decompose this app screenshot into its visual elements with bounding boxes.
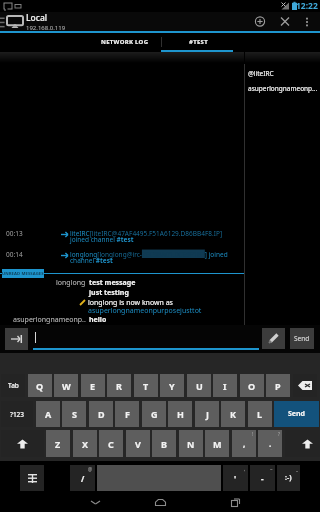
staticText: T [143,380,149,392]
button[interactable]: D [89,401,113,427]
staticText: Y [169,380,175,392]
staticText: test message [89,278,136,288]
staticText: longlong is now known as asuperlongnameo… [88,298,202,315]
staticText: asuperlongnameonp... [248,84,318,93]
button[interactable] [1,430,44,457]
button[interactable]: Message input [33,327,259,350]
staticText: @ [88,466,93,472]
button[interactable]: NETWORK LOG [89,33,161,50]
button[interactable]: Recents [225,493,245,512]
staticText: _ [296,466,298,472]
staticText: ?123 [10,410,25,419]
staticText: N [187,438,195,450]
button[interactable] [293,374,317,397]
staticText: A [45,408,52,420]
staticText: #TEST [189,38,208,46]
staticText: liteIRC[liteIRC@47AF4495.F51A6129.D86BB4… [70,229,237,244]
staticText: M [213,438,222,450]
staticText: B [161,438,167,450]
button[interactable]: B [152,430,176,457]
staticText: hello [89,315,107,325]
button[interactable]: Switch keyboard [20,465,44,491]
button[interactable]: #TEST [162,33,234,50]
button[interactable]: - [250,465,275,491]
staticText: Z [55,438,61,450]
button[interactable]: I [213,374,237,397]
staticText: longlong [56,278,86,288]
staticText: asuperlongnameonp.. [13,315,86,325]
button[interactable]: O [240,374,264,397]
button[interactable]: M [205,430,229,457]
staticText: Local [26,12,48,24]
staticText: O [248,380,256,392]
staticText: ~ [270,466,273,472]
button[interactable]: H [168,401,192,427]
button[interactable]: Send [290,328,314,349]
button[interactable]: ' [223,465,248,491]
button[interactable]: Q [28,374,52,397]
staticText: J [206,408,209,420]
button[interactable]: Back [85,493,105,512]
button[interactable]: A [36,401,60,427]
staticText: :-) [285,473,292,483]
button[interactable]: E [81,374,105,397]
staticText: longlong[longlong@irc-7EC9BA01.0CE9F1B3]… [70,250,237,265]
staticText: . [269,438,272,449]
button[interactable]: ?123 [1,401,33,427]
staticText: Tab [8,381,19,390]
staticText: W [62,380,71,392]
button[interactable]: L [248,401,272,427]
staticText: UNREAD MESSAGES [2,271,44,277]
staticText: Send [288,409,306,419]
staticText: C [108,438,114,450]
button[interactable]: U [187,374,211,397]
button[interactable]: V [126,430,150,457]
staticText: I [223,380,227,392]
staticText: K [230,408,236,420]
button[interactable]: P [266,374,290,397]
button[interactable]: Send [274,401,319,427]
button[interactable]: S [62,401,86,427]
button[interactable]: R [107,374,131,397]
staticText: V [135,438,141,450]
staticText: P [275,380,281,392]
button[interactable]: / [70,465,95,491]
button[interactable]: Tab complete [5,328,28,350]
button[interactable]: Format text [262,328,285,349]
button[interactable]: T [134,374,158,397]
button[interactable]: @liteIRC [248,66,320,81]
button[interactable]: C [99,430,123,457]
button[interactable]: Add channel [250,12,270,31]
button[interactable]: More options [300,15,314,29]
staticText: , [243,438,246,449]
button[interactable]: Close [275,12,295,31]
button[interactable]: . [258,430,282,457]
button[interactable]: J [195,401,219,427]
button[interactable]: X [73,430,97,457]
button[interactable]: Z [46,430,70,457]
staticText: ! [252,431,254,437]
staticText: ' [234,473,237,484]
button[interactable]: Home [150,493,170,512]
staticText: H [177,408,184,420]
button[interactable]: N [179,430,203,457]
button[interactable]: G [142,401,166,427]
button[interactable]: F [115,401,139,427]
staticText: just testing [89,288,129,298]
button[interactable]: Y [160,374,184,397]
button[interactable]: asuperlongnameonp... [248,81,320,96]
button[interactable]: Tab [1,374,25,397]
button[interactable]: , [232,430,256,457]
staticText: 192.168.0.119 [26,24,66,31]
staticText: 00:13 [6,229,23,238]
button[interactable] [285,430,320,457]
staticText: X [82,438,89,450]
button[interactable]: W [54,374,78,397]
button[interactable]: Emoji [277,465,300,491]
button[interactable]: K [221,401,245,427]
staticText: , [244,466,246,472]
staticText: E [90,380,96,392]
staticText: S [72,408,77,420]
staticText: 12:22 [296,0,318,12]
